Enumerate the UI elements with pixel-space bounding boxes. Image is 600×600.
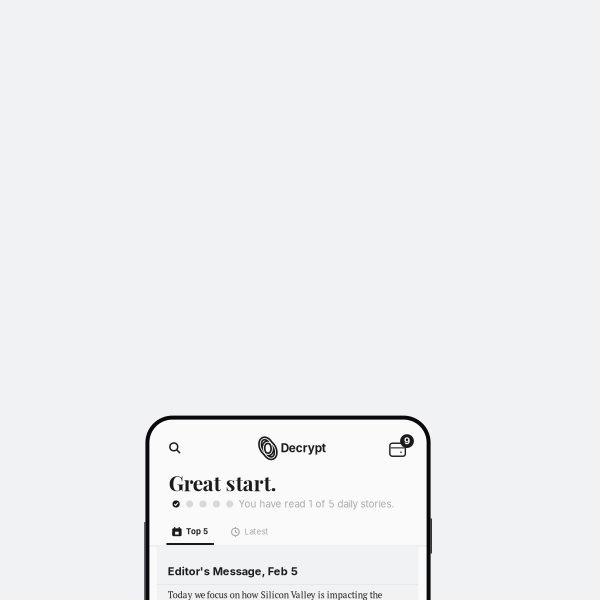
- staticText: Today we focus on how Silicon Valley is …: [168, 589, 382, 600]
- button[interactable]: Search: [169, 435, 195, 461]
- button[interactable]: Wallet: [389, 435, 414, 461]
- staticText: Top 5: [186, 527, 208, 536]
- staticText: Latest: [245, 527, 269, 536]
- staticText: 9: [404, 435, 410, 447]
- button[interactable]: Top 5: [166, 526, 214, 545]
- staticText: You have read 1 of 5 daily stories.: [238, 498, 394, 510]
- staticText: Editor's Message, Feb 5: [168, 565, 298, 578]
- button[interactable]: Latest: [226, 526, 273, 545]
- staticText: Great start.: [169, 469, 277, 496]
- button[interactable]: Decrypt: [259, 435, 326, 461]
- staticText: Decrypt: [281, 441, 326, 455]
